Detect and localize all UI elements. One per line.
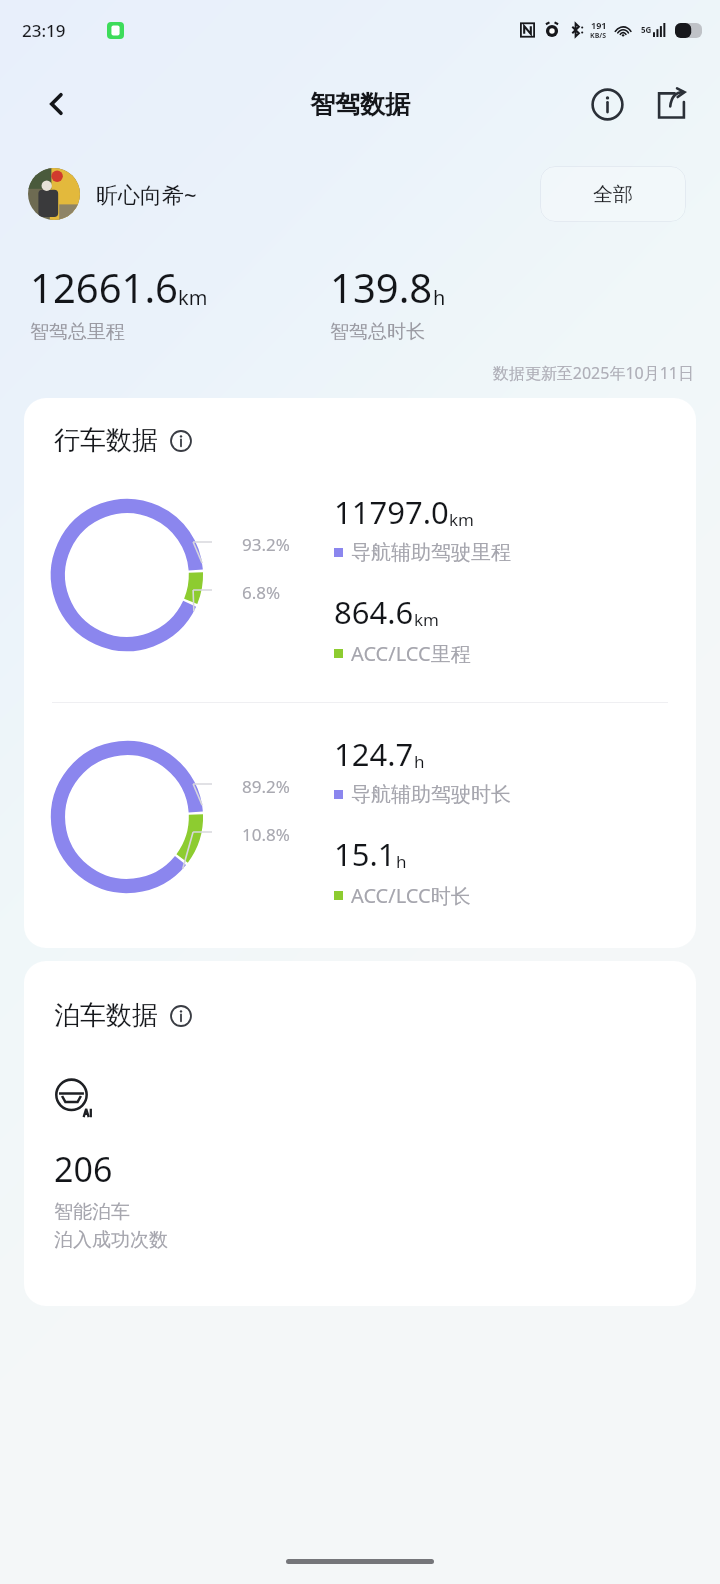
staticText: 864.6 (334, 591, 414, 633)
staticText: 智能泊车 (54, 1200, 130, 1224)
button[interactable]: 行车数据 (24, 398, 696, 948)
staticText: 导航辅助驾驶时长 (351, 782, 511, 807)
staticText: 10.8% (242, 823, 290, 846)
staticText: 93.2% (242, 533, 290, 556)
staticText: 泊入成功次数 (54, 1228, 168, 1252)
staticText: 206 (54, 1146, 113, 1192)
staticText: 智驾总里程 (30, 320, 125, 344)
button[interactable]: 全部 (540, 166, 686, 222)
staticText: 导航辅助驾驶里程 (351, 540, 511, 565)
staticText: 15.1 (334, 833, 396, 875)
button[interactable]: 泊车数据 (24, 961, 696, 1306)
button[interactable]: Info (584, 81, 630, 127)
staticText: 12661.6 (30, 260, 178, 314)
staticText: km (414, 608, 439, 631)
button[interactable]: More info (168, 428, 194, 454)
staticText: 5G (641, 24, 652, 35)
staticText: 数据更新至2025年10月11日 (0, 362, 694, 384)
staticText: 智驾总时长 (330, 320, 425, 344)
staticText: h (414, 750, 425, 773)
staticText: 6.8% (242, 581, 281, 604)
staticText: h (396, 850, 407, 873)
staticText: 泊车数据 (54, 999, 158, 1032)
staticText: h (433, 284, 446, 311)
staticText: ACC/LCC里程 (351, 640, 471, 667)
staticText: 昕心向希~ (96, 179, 197, 209)
staticText: 智驾数据 (310, 89, 410, 120)
staticText: 191 (591, 19, 607, 31)
staticText: 全部 (593, 182, 633, 207)
staticText: 行车数据 (54, 424, 158, 457)
button[interactable]: 昕心向希~ (28, 168, 197, 220)
staticText: ACC/LCC时长 (351, 882, 471, 909)
staticText: KB/S (590, 31, 607, 41)
staticText: 124.7 (334, 733, 414, 775)
staticText: 89.2% (242, 775, 290, 798)
staticText: 11797.0 (334, 491, 449, 533)
button[interactable]: More info (168, 1003, 194, 1029)
staticText: km (178, 284, 208, 311)
button[interactable]: Share (648, 81, 694, 127)
staticText: 139.8 (330, 260, 433, 314)
button[interactable]: Back (34, 81, 80, 127)
staticText: km (449, 508, 474, 531)
staticText: 23:19 (22, 19, 66, 42)
